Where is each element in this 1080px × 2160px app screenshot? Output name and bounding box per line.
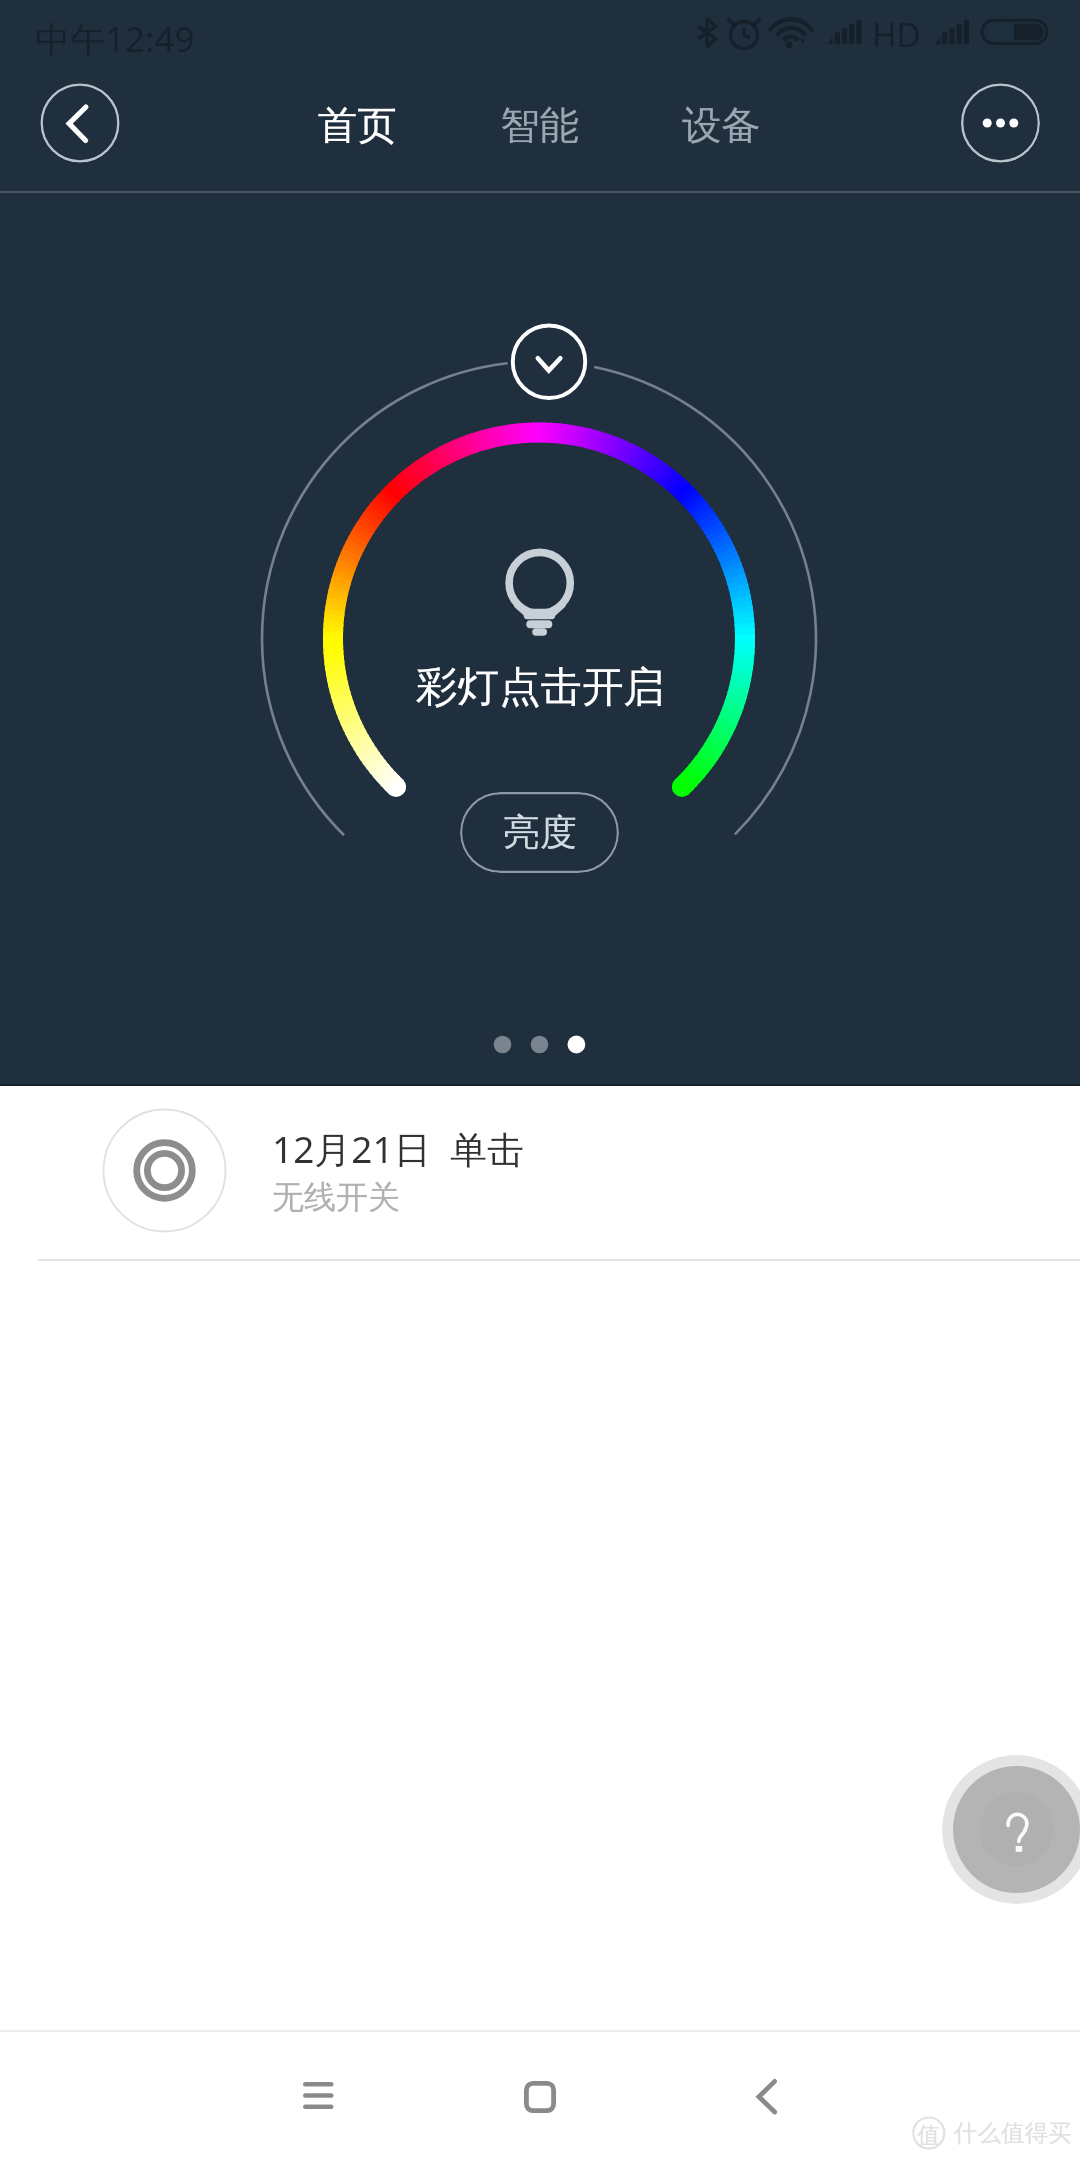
staticText: 亮度 <box>503 809 577 856</box>
button[interactable]: 亮度 <box>460 792 619 873</box>
button[interactable]: Home <box>500 2032 580 2160</box>
button[interactable]: More options <box>960 83 1040 163</box>
button[interactable]: Back <box>40 83 120 163</box>
staticText: 中午12:49 <box>35 15 195 63</box>
button[interactable]: 设备 <box>682 101 761 151</box>
button[interactable]: 12月21日 单击 <box>0 1086 1080 1259</box>
button[interactable]: Help <box>942 1755 1080 1904</box>
button[interactable]: Menu <box>280 2032 360 2160</box>
staticText: 值 <box>917 2121 940 2150</box>
staticText: 12月21日 单击 <box>272 1123 524 1174</box>
staticText: HD <box>872 12 921 57</box>
button[interactable]: Back <box>727 2032 807 2160</box>
staticText: 设备 <box>682 101 761 151</box>
button[interactable]: 智能 <box>500 101 579 151</box>
staticText: 首页 <box>318 101 397 151</box>
staticText: 什么值得买 <box>954 2118 1072 2148</box>
button[interactable]: 首页 <box>318 101 397 151</box>
staticText: 智能 <box>500 101 579 151</box>
staticText: 彩灯点击开启 <box>416 661 665 713</box>
button[interactable]: Collapse <box>510 323 588 401</box>
staticText: 无线开关 <box>272 1177 400 1217</box>
